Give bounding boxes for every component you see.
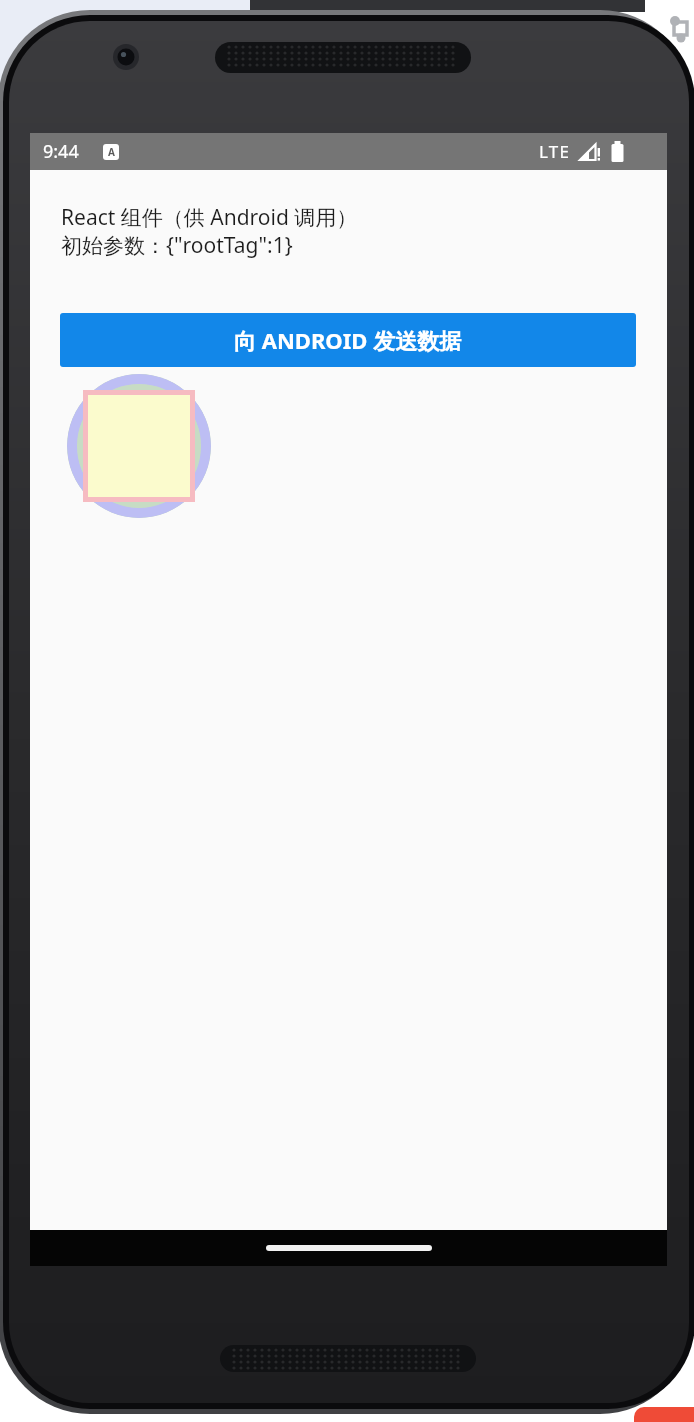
staticText: LTE xyxy=(539,140,571,163)
staticText: 向 ANDROID 发送数据 xyxy=(234,325,462,355)
staticText: 9:44 xyxy=(43,139,79,164)
staticText: A xyxy=(108,145,115,159)
button[interactable]: 向 ANDROID 发送数据 xyxy=(60,313,636,367)
staticText: React 组件（供 Android 调用） xyxy=(61,203,358,232)
staticText: 初始参数：{"rootTag":1} xyxy=(61,231,293,260)
